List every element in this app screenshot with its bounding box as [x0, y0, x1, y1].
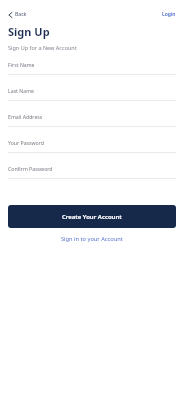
button[interactable]: Confirm Password: [8, 165, 176, 179]
staticText: Create Your Account: [62, 213, 122, 221]
button[interactable]: Your Password: [8, 139, 176, 153]
button[interactable]: First Name: [8, 61, 176, 75]
button[interactable]: Last Name: [8, 87, 176, 101]
button[interactable]: Login: [161, 10, 177, 19]
staticText: Sign Up: [8, 24, 50, 39]
button[interactable]: Email Address: [8, 113, 176, 127]
staticText: Sign Up for a New Account: [8, 44, 77, 51]
staticText: Last Name: [8, 87, 34, 94]
button[interactable]: Sign in to your Account: [60, 234, 124, 244]
staticText: Your Password: [8, 139, 44, 146]
button[interactable]: Back: [7, 10, 28, 19]
staticText: Email Address: [8, 113, 43, 120]
staticText: First Name: [8, 61, 35, 68]
staticText: Back: [15, 11, 27, 18]
staticText: Login: [162, 11, 176, 18]
button[interactable]: Create Your Account: [8, 205, 176, 228]
staticText: Confirm Password: [8, 165, 53, 172]
